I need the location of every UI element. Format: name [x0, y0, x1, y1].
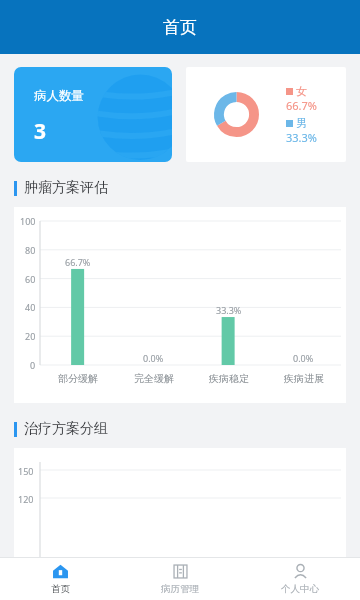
staticText: 150: [18, 465, 34, 477]
staticText: 60: [25, 273, 36, 285]
button[interactable]: 首页: [0, 558, 120, 600]
button[interactable]: 病历管理: [120, 558, 240, 600]
staticText: 病历管理: [161, 583, 199, 595]
staticText: 女: [296, 84, 307, 98]
staticText: 首页: [163, 17, 197, 38]
staticText: 100: [20, 215, 36, 227]
staticText: 0: [30, 359, 36, 371]
staticText: 33.3%: [216, 304, 242, 316]
staticText: 完全缓解: [134, 372, 174, 385]
button[interactable]: 女: [186, 67, 346, 162]
staticText: 疾病进展: [284, 372, 324, 385]
staticText: 66.7%: [65, 256, 91, 268]
staticText: 20: [25, 330, 36, 342]
staticText: 肿瘤方案评估: [24, 179, 108, 197]
button[interactable]: 个人中心: [240, 558, 360, 600]
staticText: 男: [296, 116, 307, 130]
staticText: 80: [25, 244, 36, 256]
staticText: 33.3%: [286, 130, 317, 145]
staticText: 66.7%: [286, 98, 317, 113]
button[interactable]: 病人数量: [14, 67, 172, 162]
staticText: 3: [34, 117, 47, 146]
staticText: 病人数量: [34, 88, 84, 104]
staticText: 0.0%: [143, 352, 164, 364]
staticText: 个人中心: [281, 583, 319, 595]
staticText: 疾病稳定: [209, 372, 249, 385]
staticText: 部分缓解: [58, 372, 98, 385]
staticText: 首页: [51, 583, 70, 595]
staticText: 0.0%: [293, 352, 314, 364]
staticText: 治疗方案分组: [24, 420, 108, 438]
staticText: 40: [25, 301, 36, 313]
staticText: 120: [18, 493, 34, 505]
